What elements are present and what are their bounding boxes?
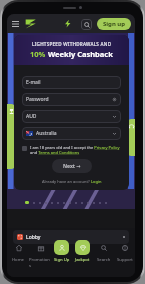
button[interactable]: Menu [10, 18, 21, 30]
staticText: E-mail [26, 79, 41, 86]
staticText: Support [117, 257, 133, 263]
button[interactable]: Support chat [128, 119, 135, 156]
staticText: Next → [63, 163, 81, 170]
button[interactable]: Sign Up [51, 240, 72, 276]
staticText: Already have an account? [42, 179, 91, 184]
staticText: 10% [30, 49, 48, 59]
button[interactable]: Search [81, 19, 92, 30]
button[interactable]: Promotions [29, 240, 51, 276]
staticText: AUD [26, 113, 37, 120]
button[interactable]: Next → [52, 159, 92, 173]
staticText: Jackpot [75, 257, 90, 263]
staticText: Search [97, 257, 111, 263]
staticText: Home [12, 257, 24, 263]
button[interactable]: Fast games [64, 19, 71, 28]
button[interactable]: Australia [22, 127, 121, 140]
button[interactable]: Already have an account? [42, 179, 102, 184]
staticText: Weekly Cashback [48, 49, 113, 59]
button[interactable]: Lobby [13, 230, 129, 244]
button[interactable]: Support [114, 240, 135, 276]
button[interactable]: Home logo [25, 19, 36, 29]
button[interactable]: Password [22, 93, 121, 106]
staticText: Sign Up [54, 257, 70, 263]
button[interactable]: Search [93, 240, 114, 276]
staticText: Login [91, 179, 102, 184]
button[interactable]: Jackpot [72, 240, 93, 276]
staticText: Password [26, 96, 49, 103]
button[interactable]: Accept terms [22, 145, 121, 155]
staticText: Promotions [29, 257, 51, 269]
button[interactable]: Sign up [97, 18, 131, 30]
button[interactable]: Home [7, 240, 29, 276]
staticText: LIGHTSPEED WITHDRAWALS AND [32, 41, 112, 47]
staticText: Lobby [26, 234, 41, 241]
button[interactable]: Tournaments [7, 104, 15, 169]
staticText: Australia [36, 130, 57, 137]
staticText: Sign up [103, 20, 126, 28]
button[interactable]: AUD [22, 110, 121, 123]
button[interactable]: E-mail [22, 76, 121, 89]
staticText: I am 18 years old and I accept the Priva… [30, 145, 121, 155]
